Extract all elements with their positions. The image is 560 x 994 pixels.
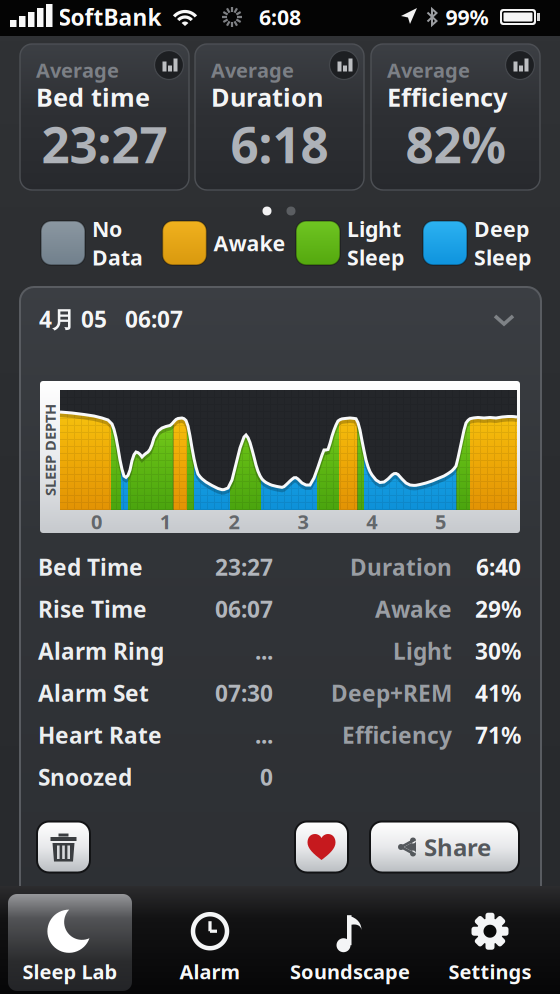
staticText: No	[92, 215, 122, 243]
button[interactable]: Alarm	[140, 890, 280, 990]
staticText: Sleep Lab	[22, 958, 117, 985]
staticText: Efficiency	[342, 720, 452, 750]
button[interactable]: Sleep Lab	[0, 890, 140, 990]
staticText: 29%	[475, 594, 521, 624]
staticText: 07:30	[215, 678, 273, 708]
staticText: Settings	[448, 958, 531, 985]
staticText: 23:27	[215, 552, 273, 582]
staticText: 30%	[475, 636, 521, 666]
staticText: SoftBank	[58, 2, 161, 32]
staticText: Light	[393, 636, 452, 666]
staticText: 99%	[445, 3, 488, 31]
staticText: 3	[297, 508, 308, 535]
staticText: Alarm Set	[38, 678, 149, 708]
staticText: Rise Time	[38, 594, 147, 624]
staticText: 4月 05 06:07	[39, 304, 183, 334]
staticText: Data	[92, 243, 143, 271]
staticText: 2	[229, 508, 240, 535]
staticText: 5	[435, 508, 446, 535]
button[interactable]: Share	[370, 821, 519, 872]
button[interactable]: Soundscape	[280, 890, 420, 990]
staticText: Share	[424, 831, 491, 863]
staticText: Efficiency	[387, 80, 507, 114]
button[interactable]: Average	[195, 44, 364, 190]
staticText: Bed time	[36, 80, 150, 114]
staticText: Soundscape	[290, 958, 410, 985]
button[interactable]: Collapse	[483, 304, 525, 336]
staticText: 41%	[475, 678, 521, 708]
staticText: Deep+REM	[331, 678, 452, 708]
staticText: 23:27	[41, 111, 167, 177]
staticText: 6:40	[476, 552, 521, 582]
staticText: 0	[260, 762, 273, 792]
staticText: 6:08	[259, 3, 301, 31]
staticText: Average	[36, 57, 119, 83]
button[interactable]: Settings	[420, 890, 560, 990]
staticText: Sleep	[474, 243, 531, 271]
staticText: Snoozed	[38, 762, 132, 792]
button[interactable]: Favorite	[295, 821, 348, 872]
staticText: 0	[91, 508, 102, 535]
staticText: 82%	[405, 111, 505, 177]
staticText: Deep	[474, 215, 529, 243]
staticText: Alarm Ring	[38, 636, 164, 666]
staticText: Duration	[350, 552, 452, 582]
staticText: Sleep	[347, 243, 404, 271]
staticText: SLEEP DEPTH	[4, 440, 96, 460]
staticText: ...	[255, 636, 273, 666]
staticText: Average	[211, 57, 294, 83]
staticText: Duration	[211, 80, 323, 114]
staticText: 6:18	[230, 111, 328, 177]
staticText: ...	[255, 720, 273, 750]
staticText: 4	[366, 508, 377, 535]
staticText: Alarm	[179, 958, 240, 985]
button[interactable]: Average	[20, 44, 189, 190]
staticText: Awake	[375, 594, 452, 624]
staticText: 06:07	[215, 594, 273, 624]
staticText: Average	[387, 57, 470, 83]
staticText: Bed Time	[38, 552, 143, 582]
staticText: Light	[347, 215, 401, 243]
staticText: 71%	[475, 720, 521, 750]
button[interactable]: Delete	[37, 821, 90, 872]
staticText: Awake	[213, 229, 285, 257]
staticText: 1	[160, 508, 171, 535]
button[interactable]: Average	[371, 44, 540, 190]
staticText: Heart Rate	[38, 720, 162, 750]
